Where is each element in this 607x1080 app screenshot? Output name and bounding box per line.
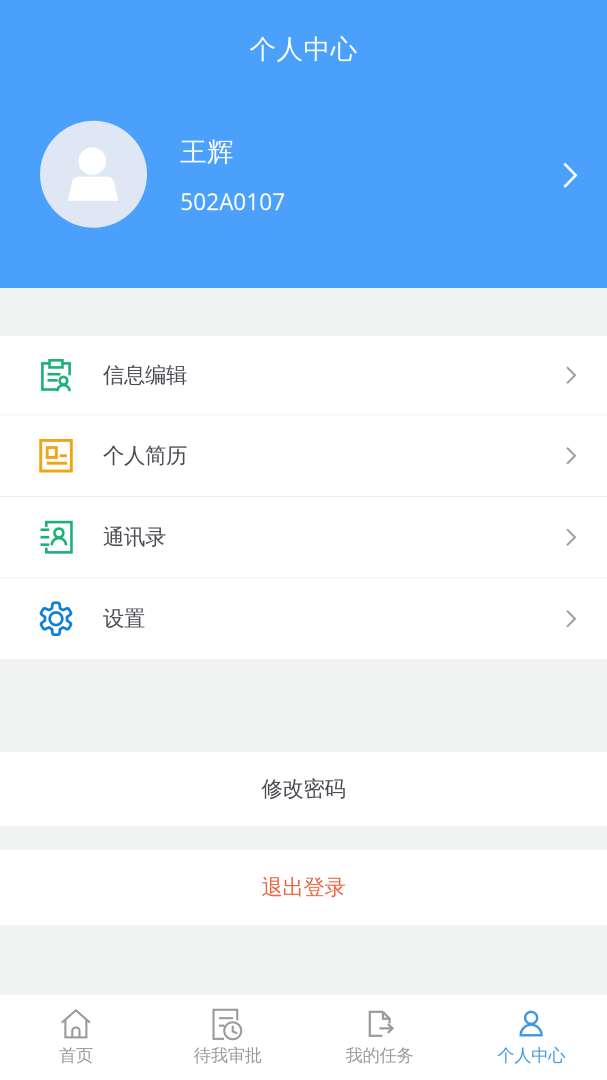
staticText: 通讯录 — [103, 524, 166, 550]
button[interactable]: 王辉 — [0, 117, 607, 224]
button[interactable]: 通讯录 — [0, 497, 607, 577]
staticText: 设置 — [103, 606, 145, 632]
staticText: 个人简历 — [103, 443, 187, 469]
staticText: 首页 — [59, 1045, 93, 1066]
button[interactable]: 修改密码 — [0, 752, 607, 826]
staticText: 退出登录 — [261, 874, 345, 901]
staticText: 王辉 — [180, 136, 234, 169]
staticText: 修改密码 — [261, 776, 345, 802]
staticText: 502A0107 — [180, 186, 285, 217]
button[interactable]: 待我审批 — [152, 999, 304, 1076]
button[interactable]: 信息编辑 — [0, 336, 607, 414]
staticText: 个人中心 — [249, 33, 357, 66]
button[interactable]: 个人简历 — [0, 415, 607, 496]
staticText: 待我审批 — [194, 1045, 262, 1066]
button[interactable]: 首页 — [0, 999, 152, 1076]
button[interactable]: 设置 — [0, 578, 607, 659]
button[interactable]: 退出登录 — [0, 850, 607, 925]
button[interactable]: 我的任务 — [303, 999, 455, 1076]
button[interactable]: 个人中心 — [455, 999, 607, 1076]
staticText: 我的任务 — [345, 1045, 413, 1066]
staticText: 个人中心 — [497, 1045, 565, 1066]
staticText: 信息编辑 — [103, 362, 187, 388]
